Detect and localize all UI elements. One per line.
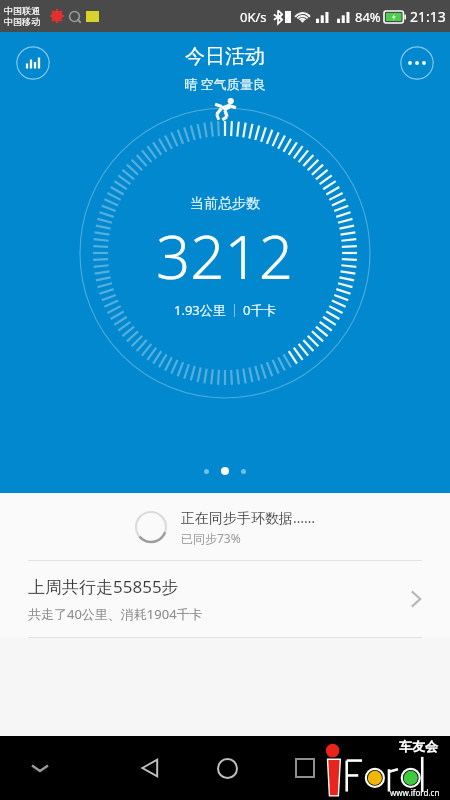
button[interactable]: Collapse — [20, 748, 60, 788]
staticText: 3212 — [156, 215, 294, 297]
staticText: 21:13 — [410, 7, 446, 26]
staticText: 上周共行走55855步 — [28, 575, 179, 598]
button[interactable]: 上周共行走55855步 — [0, 561, 450, 637]
staticText: 晴 空气质量良 — [184, 75, 266, 93]
staticText: 已同步73% — [181, 530, 241, 546]
staticText: 0千卡 — [243, 301, 277, 319]
staticText: 正在同步手环数据…… — [181, 508, 316, 527]
staticText: 1.93公里 — [174, 301, 226, 319]
button[interactable]: More options — [400, 46, 434, 80]
staticText: 今日活动 — [185, 44, 265, 69]
button[interactable]: Recent apps — [281, 744, 329, 792]
staticText: www.iford.cn — [390, 787, 440, 798]
staticText: 0K/s — [240, 8, 267, 26]
staticText: 共走了40公里、消耗1904千卡 — [28, 605, 203, 623]
button[interactable]: 正在同步手环数据…… — [0, 493, 450, 560]
button[interactable]: Back — [126, 744, 174, 792]
staticText: 车友会 — [399, 738, 438, 754]
staticText: 当前总步数 — [190, 195, 260, 213]
staticText: 中国移动 — [4, 16, 40, 27]
staticText: 84% — [355, 8, 381, 26]
button[interactable]: Statistics — [16, 46, 50, 80]
button[interactable]: Home — [203, 744, 251, 792]
staticText: 中国联通 — [4, 5, 40, 16]
